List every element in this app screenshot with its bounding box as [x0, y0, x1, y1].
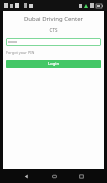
staticText: Dubai Driving Center: [3, 15, 104, 23]
button[interactable]: Recent apps: [75, 170, 87, 182]
button[interactable]: Login: [6, 60, 101, 68]
staticText: Login: [6, 61, 101, 67]
button[interactable]: [6, 38, 101, 46]
button[interactable]: Home: [48, 170, 60, 182]
staticText: CTS: [3, 27, 104, 33]
staticText: Forgot your PIN: [6, 50, 101, 55]
button[interactable]: Back: [20, 170, 32, 182]
button[interactable]: Forgot your PIN: [6, 50, 101, 55]
